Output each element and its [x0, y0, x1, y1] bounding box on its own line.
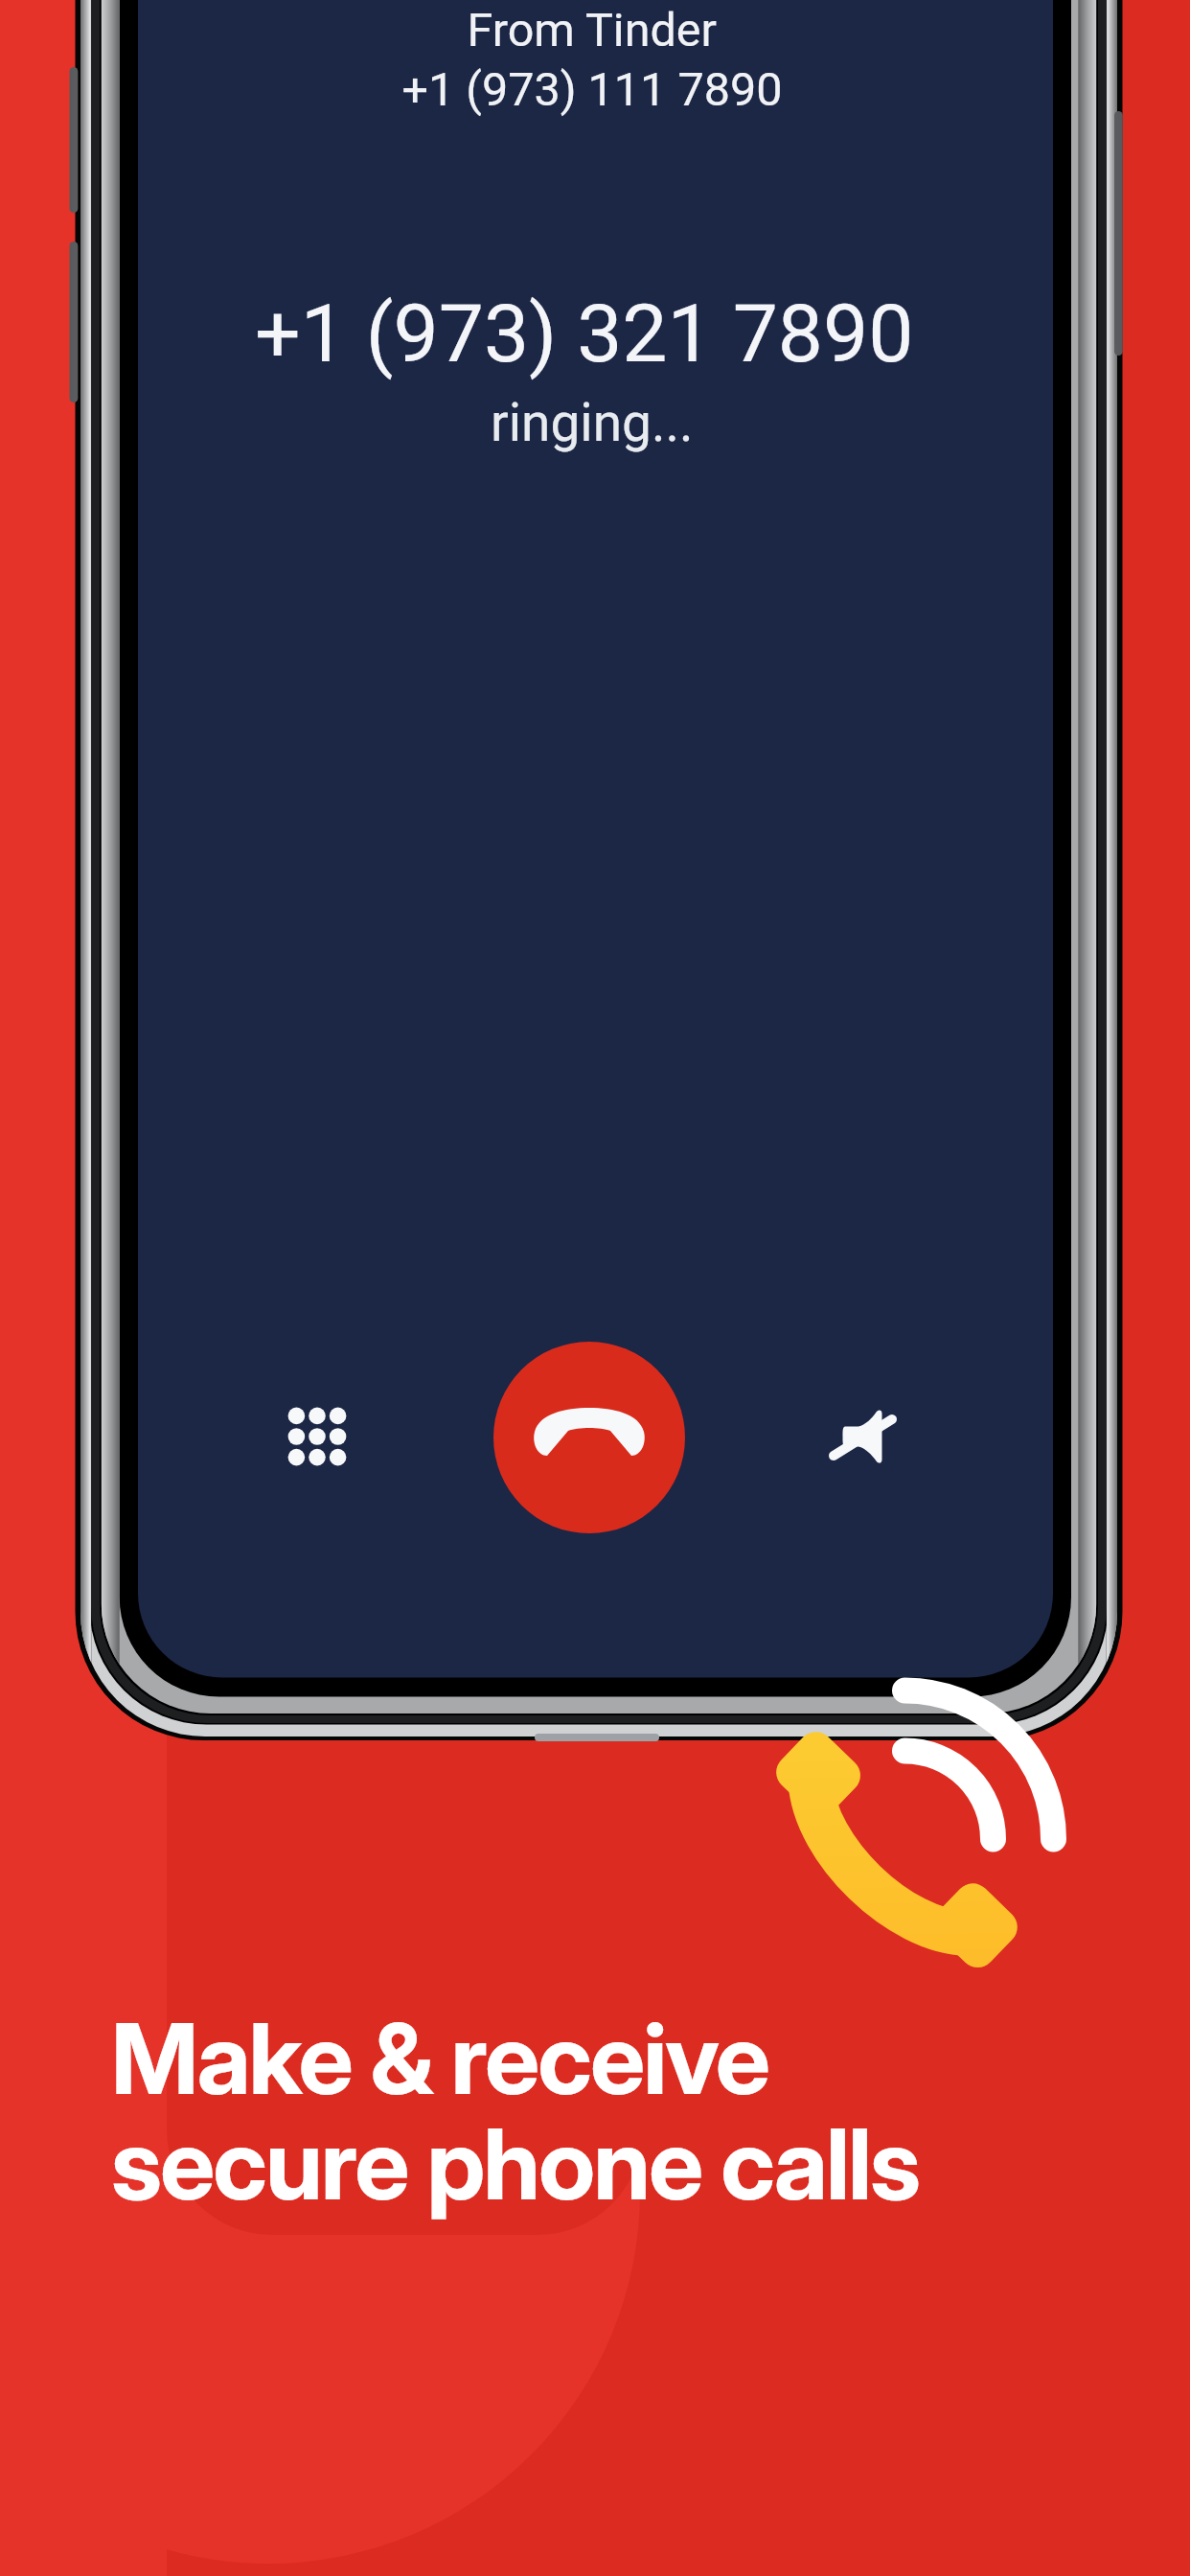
button[interactable]: End call [493, 1342, 685, 1533]
button[interactable]: Show dialpad [273, 1392, 361, 1481]
button[interactable]: Unmute speaker [818, 1392, 906, 1481]
